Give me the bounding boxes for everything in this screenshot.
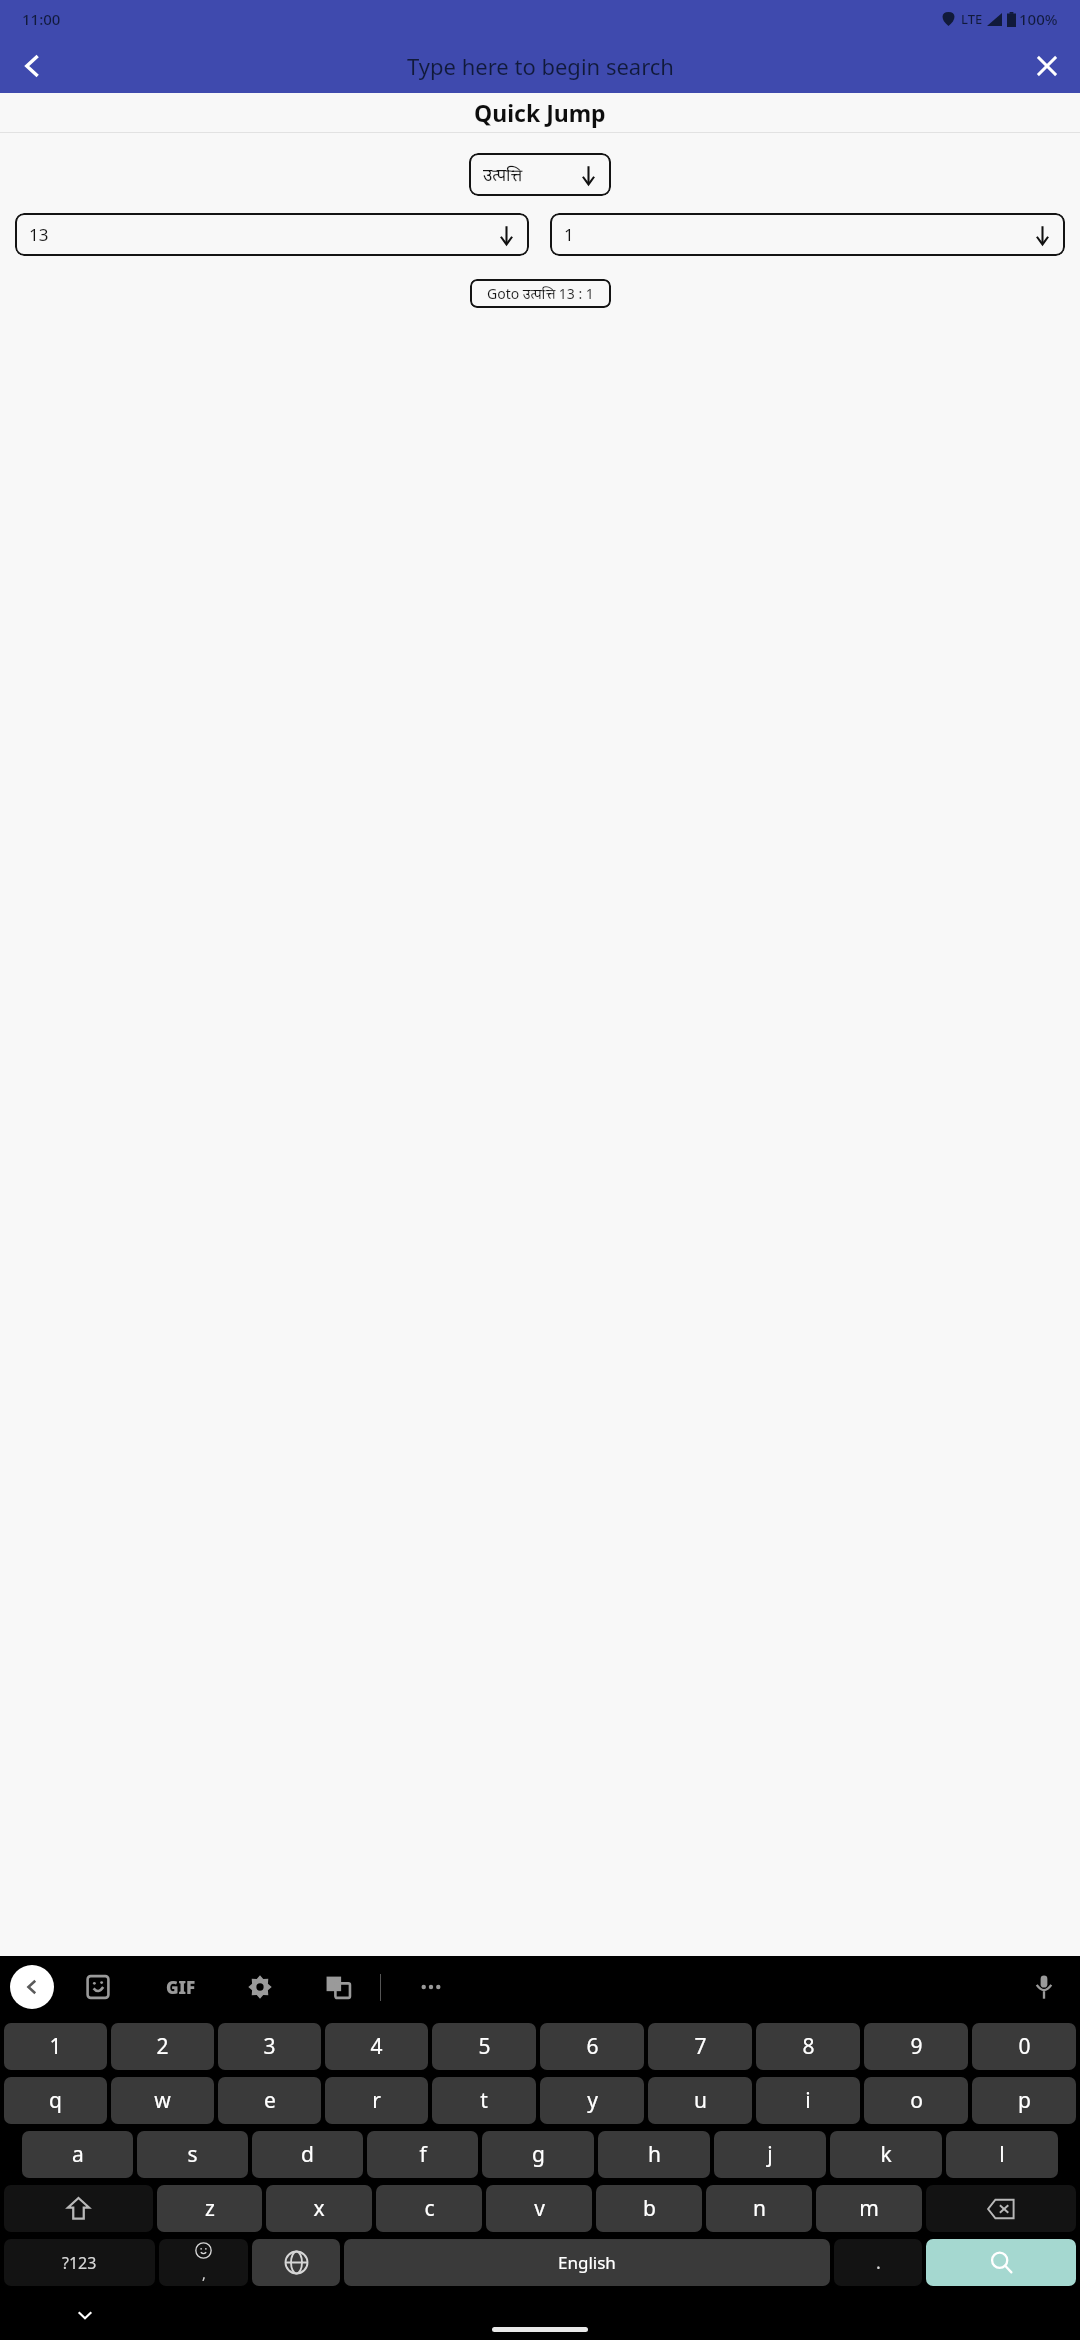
button[interactable]: n xyxy=(706,2185,812,2232)
button[interactable]: c xyxy=(376,2185,482,2232)
button[interactable]: Type here to begin search xyxy=(66,51,1014,81)
staticText: c xyxy=(424,2194,435,2223)
button[interactable]: 9 xyxy=(864,2023,968,2070)
staticText: o xyxy=(910,2086,923,2115)
button[interactable]: w xyxy=(111,2077,214,2124)
button[interactable]: Back xyxy=(0,38,66,93)
button[interactable]: 13 xyxy=(15,213,529,256)
staticText: 11:00 xyxy=(22,9,61,29)
staticText: ?123 xyxy=(62,2252,97,2274)
button[interactable]: t xyxy=(432,2077,536,2124)
staticText: 100% xyxy=(1019,9,1058,29)
staticText: u xyxy=(694,2086,707,2115)
staticText: b xyxy=(643,2194,656,2223)
button[interactable]: f xyxy=(367,2131,478,2178)
button[interactable]: 0 xyxy=(972,2023,1076,2070)
staticText: z xyxy=(205,2194,215,2223)
button[interactable]: h xyxy=(598,2131,710,2178)
button[interactable]: ?123 xyxy=(4,2239,155,2286)
staticText: v xyxy=(534,2194,545,2223)
button[interactable]: 4 xyxy=(325,2023,428,2070)
button[interactable]: e xyxy=(218,2077,321,2124)
button[interactable]: Goto उत्पत्ति 13 : 1 xyxy=(470,279,611,308)
button[interactable]: 1 xyxy=(550,213,1065,256)
staticText: . xyxy=(876,2250,881,2275)
staticText: h xyxy=(648,2140,661,2169)
staticText: a xyxy=(72,2140,84,2169)
button[interactable]: 7 xyxy=(648,2023,752,2070)
staticText: 1 xyxy=(49,2032,62,2061)
button[interactable]: d xyxy=(252,2131,363,2178)
button[interactable]: m xyxy=(816,2185,922,2232)
button[interactable]: s xyxy=(137,2131,248,2178)
staticText: s xyxy=(187,2140,198,2169)
button[interactable]: Translate xyxy=(318,1967,358,2007)
button[interactable]: Emoji xyxy=(159,2239,248,2286)
button[interactable]: Voice input xyxy=(1022,1965,1066,2009)
staticText: w xyxy=(154,2086,171,2115)
button[interactable]: y xyxy=(540,2077,644,2124)
staticText: x xyxy=(313,2194,325,2223)
staticText: d xyxy=(301,2140,314,2169)
button[interactable]: k xyxy=(830,2131,942,2178)
staticText: , xyxy=(202,2264,206,2283)
button[interactable]: Settings xyxy=(240,1967,280,2007)
staticText: 4 xyxy=(370,2032,383,2061)
staticText: English xyxy=(558,2251,616,2274)
button[interactable]: o xyxy=(864,2077,968,2124)
staticText: Quick Jump xyxy=(474,97,606,128)
button[interactable]: u xyxy=(648,2077,752,2124)
button[interactable]: v xyxy=(486,2185,592,2232)
staticText: q xyxy=(49,2086,62,2115)
button[interactable]: 2 xyxy=(111,2023,214,2070)
button[interactable]: 3 xyxy=(218,2023,321,2070)
staticText: e xyxy=(264,2086,276,2115)
button[interactable]: Shift xyxy=(4,2185,153,2232)
button[interactable]: उत्पत्ति xyxy=(469,153,611,196)
button[interactable]: i xyxy=(756,2077,860,2124)
staticText: r xyxy=(372,2086,381,2115)
staticText: j xyxy=(767,2140,773,2169)
staticText: 2 xyxy=(156,2032,169,2061)
button[interactable]: 1 xyxy=(4,2023,107,2070)
button[interactable]: English xyxy=(344,2239,830,2286)
button[interactable]: . xyxy=(834,2239,922,2286)
staticText: Type here to begin search xyxy=(407,51,674,81)
button[interactable]: 5 xyxy=(432,2023,536,2070)
button[interactable]: Change language xyxy=(252,2239,340,2286)
button[interactable]: a xyxy=(22,2131,133,2178)
staticText: p xyxy=(1018,2086,1031,2115)
button[interactable]: Search xyxy=(926,2239,1076,2286)
staticText: y xyxy=(587,2086,598,2115)
button[interactable]: Hide keyboard xyxy=(70,2300,100,2330)
button[interactable]: 8 xyxy=(756,2023,860,2070)
button[interactable]: 6 xyxy=(540,2023,644,2070)
button[interactable]: Backspace xyxy=(926,2185,1076,2232)
button[interactable]: q xyxy=(4,2077,107,2124)
button[interactable]: r xyxy=(325,2077,428,2124)
staticText: f xyxy=(419,2140,427,2169)
button[interactable]: z xyxy=(157,2185,262,2232)
button[interactable]: Close search xyxy=(1014,38,1080,93)
button[interactable]: Back xyxy=(10,1965,54,2009)
button[interactable]: Stickers xyxy=(78,1967,118,2007)
staticText: 13 xyxy=(29,223,49,246)
staticText: m xyxy=(859,2194,879,2223)
button[interactable]: x xyxy=(266,2185,372,2232)
staticText: LTE xyxy=(961,10,983,28)
staticText: GIF xyxy=(166,1976,196,1999)
staticText: 1 xyxy=(564,223,574,246)
button[interactable]: g xyxy=(482,2131,594,2178)
staticText: 7 xyxy=(694,2032,707,2061)
staticText: 9 xyxy=(910,2032,923,2061)
staticText: 3 xyxy=(263,2032,276,2061)
button[interactable]: More options xyxy=(409,1965,453,2009)
staticText: 6 xyxy=(586,2032,599,2061)
button[interactable]: b xyxy=(596,2185,702,2232)
staticText: 8 xyxy=(802,2032,815,2061)
button[interactable]: GIF xyxy=(156,1962,206,2012)
button[interactable]: p xyxy=(972,2077,1076,2124)
button[interactable]: l xyxy=(946,2131,1058,2178)
staticText: 0 xyxy=(1018,2032,1031,2061)
button[interactable]: j xyxy=(714,2131,826,2178)
